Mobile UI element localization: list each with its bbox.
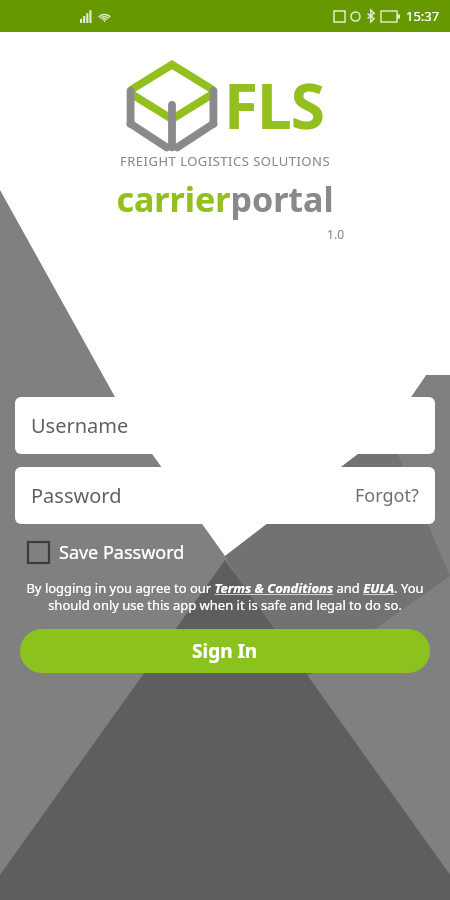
staticText: FREIGHT LOGISTICS SOLUTIONS [0,152,450,170]
staticText: Sign In [192,638,258,664]
staticText: carrierportal [0,176,450,222]
staticText: Forgot? [355,483,419,508]
button[interactable]: Save Password [22,534,191,571]
button[interactable]: Username [15,397,435,454]
button[interactable]: Password [15,467,435,524]
staticText: FLS [224,63,324,147]
staticText: By logging in you agree to our Terms & C… [6,579,444,614]
staticText: Password [31,482,122,509]
staticText: 1.0 [0,226,344,242]
staticText: Username [31,412,129,439]
other: FLS logo [126,58,218,152]
staticText: Save Password [59,540,185,565]
staticText: 15:37 [406,7,440,25]
button[interactable]: Forgot? [355,483,419,508]
button[interactable]: Sign In [20,629,430,673]
